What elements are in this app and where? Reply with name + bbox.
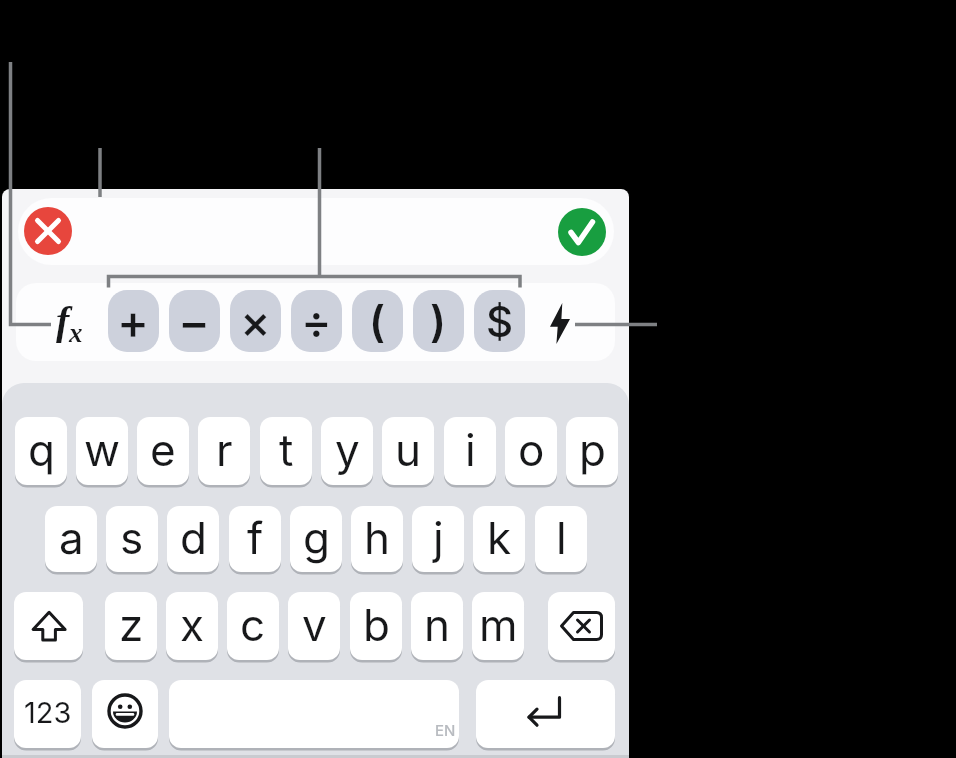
button[interactable]: − bbox=[169, 290, 220, 352]
button[interactable]: d bbox=[167, 506, 219, 572]
button[interactable]: i bbox=[444, 417, 496, 485]
button[interactable] bbox=[169, 680, 459, 748]
staticText: z bbox=[119, 598, 144, 651]
staticText: g bbox=[303, 511, 330, 564]
staticText: ÷ bbox=[301, 293, 332, 349]
button[interactable]: v bbox=[288, 592, 340, 660]
button[interactable]: f bbox=[50, 296, 94, 357]
button[interactable]: + bbox=[108, 290, 159, 352]
staticText: EN bbox=[435, 721, 456, 739]
staticText: i bbox=[465, 423, 476, 476]
button[interactable]: ÷ bbox=[291, 290, 342, 352]
button[interactable]: j bbox=[412, 506, 464, 572]
staticText: v bbox=[302, 598, 327, 651]
button[interactable]: u bbox=[382, 417, 434, 485]
staticText: b bbox=[363, 598, 390, 651]
button[interactable]: k bbox=[473, 506, 525, 572]
button[interactable] bbox=[476, 680, 615, 748]
staticText: c bbox=[240, 598, 266, 651]
staticText: w bbox=[84, 423, 121, 476]
button[interactable]: 123 bbox=[14, 680, 81, 748]
staticText: 123 bbox=[24, 695, 72, 730]
button[interactable]: f bbox=[229, 506, 281, 572]
button[interactable]: n bbox=[411, 592, 463, 660]
button[interactable] bbox=[558, 208, 606, 256]
button[interactable]: w bbox=[76, 417, 128, 485]
button[interactable]: b bbox=[350, 592, 402, 660]
staticText: f bbox=[56, 298, 70, 342]
button[interactable]: x bbox=[166, 592, 218, 660]
button[interactable]: a bbox=[45, 506, 97, 572]
button[interactable]: g bbox=[290, 506, 342, 572]
button[interactable] bbox=[24, 207, 72, 255]
staticText: x bbox=[180, 598, 205, 651]
button[interactable]: l bbox=[535, 506, 587, 572]
button[interactable]: h bbox=[351, 506, 403, 572]
staticText: ( bbox=[369, 295, 386, 347]
button[interactable] bbox=[92, 680, 158, 748]
staticText: p bbox=[579, 423, 606, 476]
button[interactable]: o bbox=[505, 417, 557, 485]
button[interactable]: $ bbox=[474, 290, 525, 352]
button[interactable]: p bbox=[566, 417, 618, 485]
button[interactable]: y bbox=[321, 417, 373, 485]
button[interactable]: t bbox=[260, 417, 312, 485]
button[interactable]: c bbox=[227, 592, 279, 660]
staticText: e bbox=[150, 423, 176, 476]
button[interactable] bbox=[538, 298, 583, 348]
staticText: × bbox=[240, 293, 271, 349]
staticText: j bbox=[433, 511, 444, 564]
staticText: $ bbox=[486, 296, 514, 347]
staticText: s bbox=[120, 511, 144, 564]
button[interactable]: ( bbox=[352, 290, 403, 352]
staticText: l bbox=[556, 511, 567, 564]
button[interactable]: q bbox=[15, 417, 67, 485]
button[interactable]: s bbox=[106, 506, 158, 572]
button[interactable]: × bbox=[230, 290, 281, 352]
staticText: + bbox=[117, 292, 150, 350]
staticText: − bbox=[178, 292, 211, 350]
staticText: o bbox=[518, 423, 545, 476]
staticText: q bbox=[28, 423, 55, 476]
staticText: h bbox=[364, 511, 391, 564]
staticText: r bbox=[216, 423, 233, 476]
button[interactable] bbox=[548, 592, 615, 660]
staticText: f bbox=[247, 511, 264, 564]
staticText: a bbox=[59, 511, 84, 564]
staticText: x bbox=[69, 318, 83, 348]
staticText: m bbox=[479, 598, 518, 651]
button[interactable] bbox=[14, 592, 83, 660]
staticText: n bbox=[424, 598, 450, 651]
button[interactable]: z bbox=[105, 592, 157, 660]
button[interactable]: ) bbox=[413, 290, 464, 352]
button[interactable]: r bbox=[198, 417, 250, 485]
staticText: d bbox=[180, 511, 207, 564]
button[interactable]: e bbox=[137, 417, 189, 485]
staticText: ) bbox=[430, 295, 447, 347]
button[interactable]: m bbox=[472, 592, 524, 660]
staticText: t bbox=[279, 423, 294, 476]
staticText: k bbox=[487, 511, 512, 564]
staticText: y bbox=[335, 423, 360, 476]
staticText: u bbox=[395, 423, 422, 476]
